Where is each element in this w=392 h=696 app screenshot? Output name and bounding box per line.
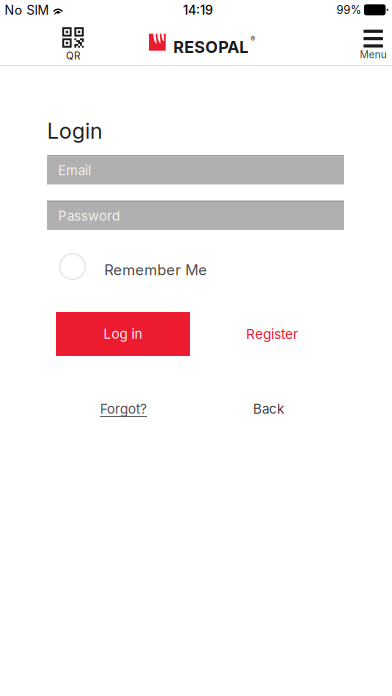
button[interactable]: Menu [351, 23, 392, 69]
button[interactable]: Scan QR code [51, 21, 95, 67]
staticText: 14:19 [183, 2, 213, 18]
staticText: 99% [336, 3, 361, 17]
staticText: Log in [103, 326, 142, 342]
staticText: Remember Me [104, 261, 207, 279]
button[interactable]: Remember Me [60, 254, 220, 290]
staticText: RESOPAL [173, 37, 248, 57]
staticText: No SIM [4, 2, 48, 18]
staticText: Menu [360, 48, 387, 61]
staticText: Register [246, 326, 298, 342]
staticText: Login [47, 118, 103, 144]
staticText: Back [253, 401, 284, 417]
staticText: Email [58, 162, 91, 178]
staticText: Forgot? [100, 401, 147, 417]
staticText: Password [58, 208, 120, 224]
button[interactable]: Log in [56, 312, 190, 356]
staticText: QR [66, 50, 80, 62]
staticText: ® [250, 35, 255, 44]
button[interactable]: Forgot? [100, 394, 170, 424]
button[interactable]: Register [227, 312, 317, 356]
button[interactable]: Back [253, 394, 313, 424]
